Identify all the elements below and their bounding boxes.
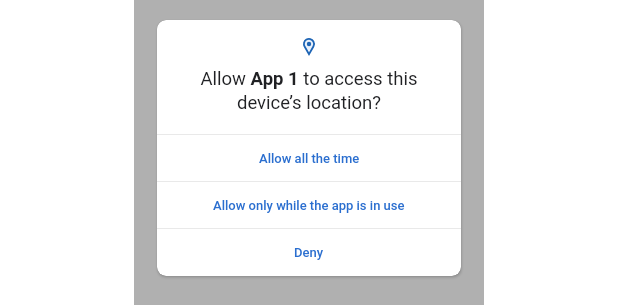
staticText: Allow App 1 to access this device’s loca… <box>157 68 461 114</box>
staticText: Allow all the time <box>259 151 360 166</box>
staticText: Deny <box>294 245 324 260</box>
button[interactable]: Allow only while the app is in use <box>157 182 461 228</box>
button[interactable]: Deny <box>157 229 461 276</box>
staticText: Allow only while the app is in use <box>213 198 405 213</box>
button[interactable]: Allow all the time <box>157 135 461 181</box>
